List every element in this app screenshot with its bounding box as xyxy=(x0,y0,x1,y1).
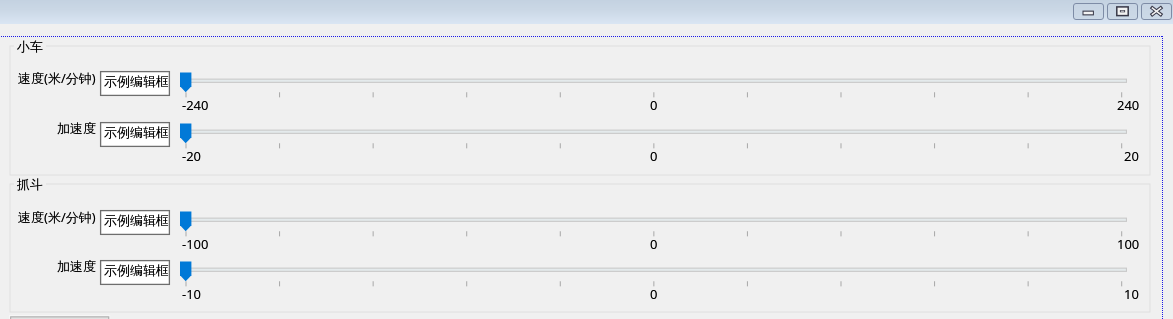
button[interactable]: 速度(米/分钟) xyxy=(18,69,96,87)
staticText: 速度(米/分钟) xyxy=(18,208,96,226)
staticText: 加速度 xyxy=(57,258,96,274)
staticText: -100 xyxy=(182,235,209,253)
button[interactable]: 示例编辑框 xyxy=(100,210,170,235)
staticText: 抓斗 xyxy=(17,176,43,192)
staticText: 10 xyxy=(1124,285,1139,303)
staticText: 示例编辑框 xyxy=(104,124,169,140)
button[interactable]: 示例编辑框 xyxy=(100,260,170,285)
staticText: 0 xyxy=(650,285,658,303)
staticText: -240 xyxy=(182,96,209,114)
staticText: 240 xyxy=(1117,96,1140,114)
button[interactable]: 抓斗 xyxy=(17,176,43,192)
staticText: 0 xyxy=(650,96,658,114)
staticText: 0 xyxy=(650,147,658,165)
staticText: 小车 xyxy=(17,38,43,54)
button[interactable]: Slider xyxy=(176,261,1136,289)
staticText: 加速度 xyxy=(57,120,96,136)
staticText: 100 xyxy=(1117,235,1140,253)
staticText: 加速度 xyxy=(57,120,96,136)
staticText: 100 xyxy=(1117,235,1140,253)
staticText: 20 xyxy=(1124,147,1139,165)
button[interactable]: 加速度 xyxy=(57,120,96,136)
staticText: -20 xyxy=(182,147,202,165)
button[interactable]: 小车 xyxy=(17,38,43,54)
button[interactable]: Slider xyxy=(176,123,1136,151)
staticText: 速度(米/分钟) xyxy=(18,69,96,87)
staticText: 10 xyxy=(1124,285,1139,303)
button[interactable]: Slider xyxy=(176,72,1136,100)
button[interactable]: Maximize xyxy=(1107,3,1138,20)
staticText: -240 xyxy=(182,96,209,114)
staticText: 速度(米/分钟) xyxy=(18,208,96,226)
staticText: 示例编辑框 xyxy=(104,212,169,228)
staticText: 240 xyxy=(1117,96,1140,114)
staticText: 0 xyxy=(650,235,658,253)
staticText: 0 xyxy=(650,147,658,165)
button[interactable]: Button xyxy=(9,315,111,319)
staticText: 速度(米/分钟) xyxy=(18,69,96,87)
staticText: 0 xyxy=(650,96,658,114)
button[interactable]: 速度(米/分钟) xyxy=(18,208,96,226)
staticText: 抓斗 xyxy=(17,176,43,192)
staticText: 加速度 xyxy=(57,258,96,274)
button[interactable]: 示例编辑框 xyxy=(100,71,170,96)
button[interactable]: 示例编辑框 xyxy=(100,122,170,147)
staticText: -10 xyxy=(182,285,202,303)
staticText: -100 xyxy=(182,235,209,253)
staticText: 示例编辑框 xyxy=(104,73,169,89)
staticText: 示例编辑框 xyxy=(104,262,169,278)
staticText: 示例编辑框 xyxy=(104,212,169,228)
staticText: 20 xyxy=(1124,147,1139,165)
button[interactable]: Minimize xyxy=(1073,3,1104,20)
button[interactable]: Slider xyxy=(176,211,1136,239)
staticText: 0 xyxy=(650,235,658,253)
button[interactable]: Close xyxy=(1141,3,1172,20)
staticText: -20 xyxy=(182,147,202,165)
staticText: 示例编辑框 xyxy=(104,124,169,140)
staticText: 示例编辑框 xyxy=(104,73,169,89)
staticText: 0 xyxy=(650,285,658,303)
staticText: 示例编辑框 xyxy=(104,262,169,278)
button[interactable]: 加速度 xyxy=(57,258,96,274)
staticText: -10 xyxy=(182,285,202,303)
staticText: 小车 xyxy=(17,38,43,54)
